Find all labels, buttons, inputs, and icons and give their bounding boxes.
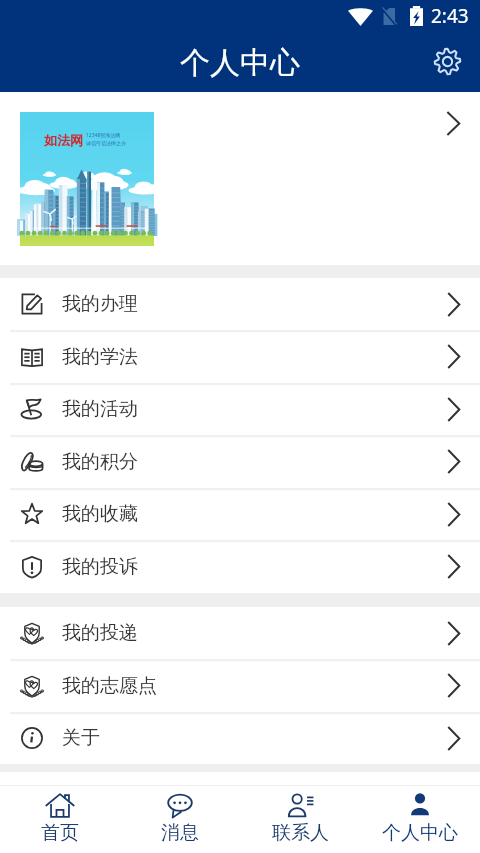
button[interactable]: 关于 [0, 712, 480, 764]
button[interactable]: 我的学法 [0, 330, 480, 383]
button[interactable]: 消息 [120, 786, 240, 853]
button[interactable]: 首页 [0, 786, 120, 853]
staticText: 如法网 [44, 132, 83, 148]
staticText: 我的办理 [62, 292, 138, 316]
staticText: 我的志愿点 [62, 674, 157, 698]
staticText: 诚信可信法律之办 [86, 140, 126, 146]
button[interactable]: 我的收藏 [0, 488, 480, 540]
staticText: 个人中心 [180, 44, 300, 82]
staticText: 2:43 [431, 3, 469, 29]
button[interactable]: 我的积分 [0, 435, 480, 488]
staticText: 我的投递 [62, 621, 138, 645]
staticText: 个人中心 [382, 821, 458, 845]
button[interactable]: Settings [427, 41, 468, 82]
staticText: 首页 [41, 821, 79, 845]
staticText: 关于 [62, 726, 100, 750]
staticText: 12348智海法网 [86, 132, 121, 139]
staticText: 联系人 [272, 821, 329, 845]
button[interactable]: 我的投诉 [0, 540, 480, 593]
button[interactable]: 个人中心 [360, 786, 480, 853]
staticText: 我的投诉 [62, 555, 138, 579]
button[interactable]: 我的志愿点 [0, 659, 480, 712]
staticText: 消息 [161, 821, 199, 845]
button[interactable]: 我的活动 [0, 383, 480, 435]
staticText: 我的学法 [62, 345, 138, 369]
button[interactable]: 联系人 [240, 786, 360, 853]
staticText: 我的收藏 [62, 502, 138, 526]
staticText: 我的积分 [62, 450, 138, 474]
button[interactable]: 我的办理 [0, 278, 480, 330]
staticText: 我的活动 [62, 397, 138, 421]
button[interactable]: 如法网 [0, 92, 480, 265]
button[interactable]: 我的投递 [0, 607, 480, 659]
